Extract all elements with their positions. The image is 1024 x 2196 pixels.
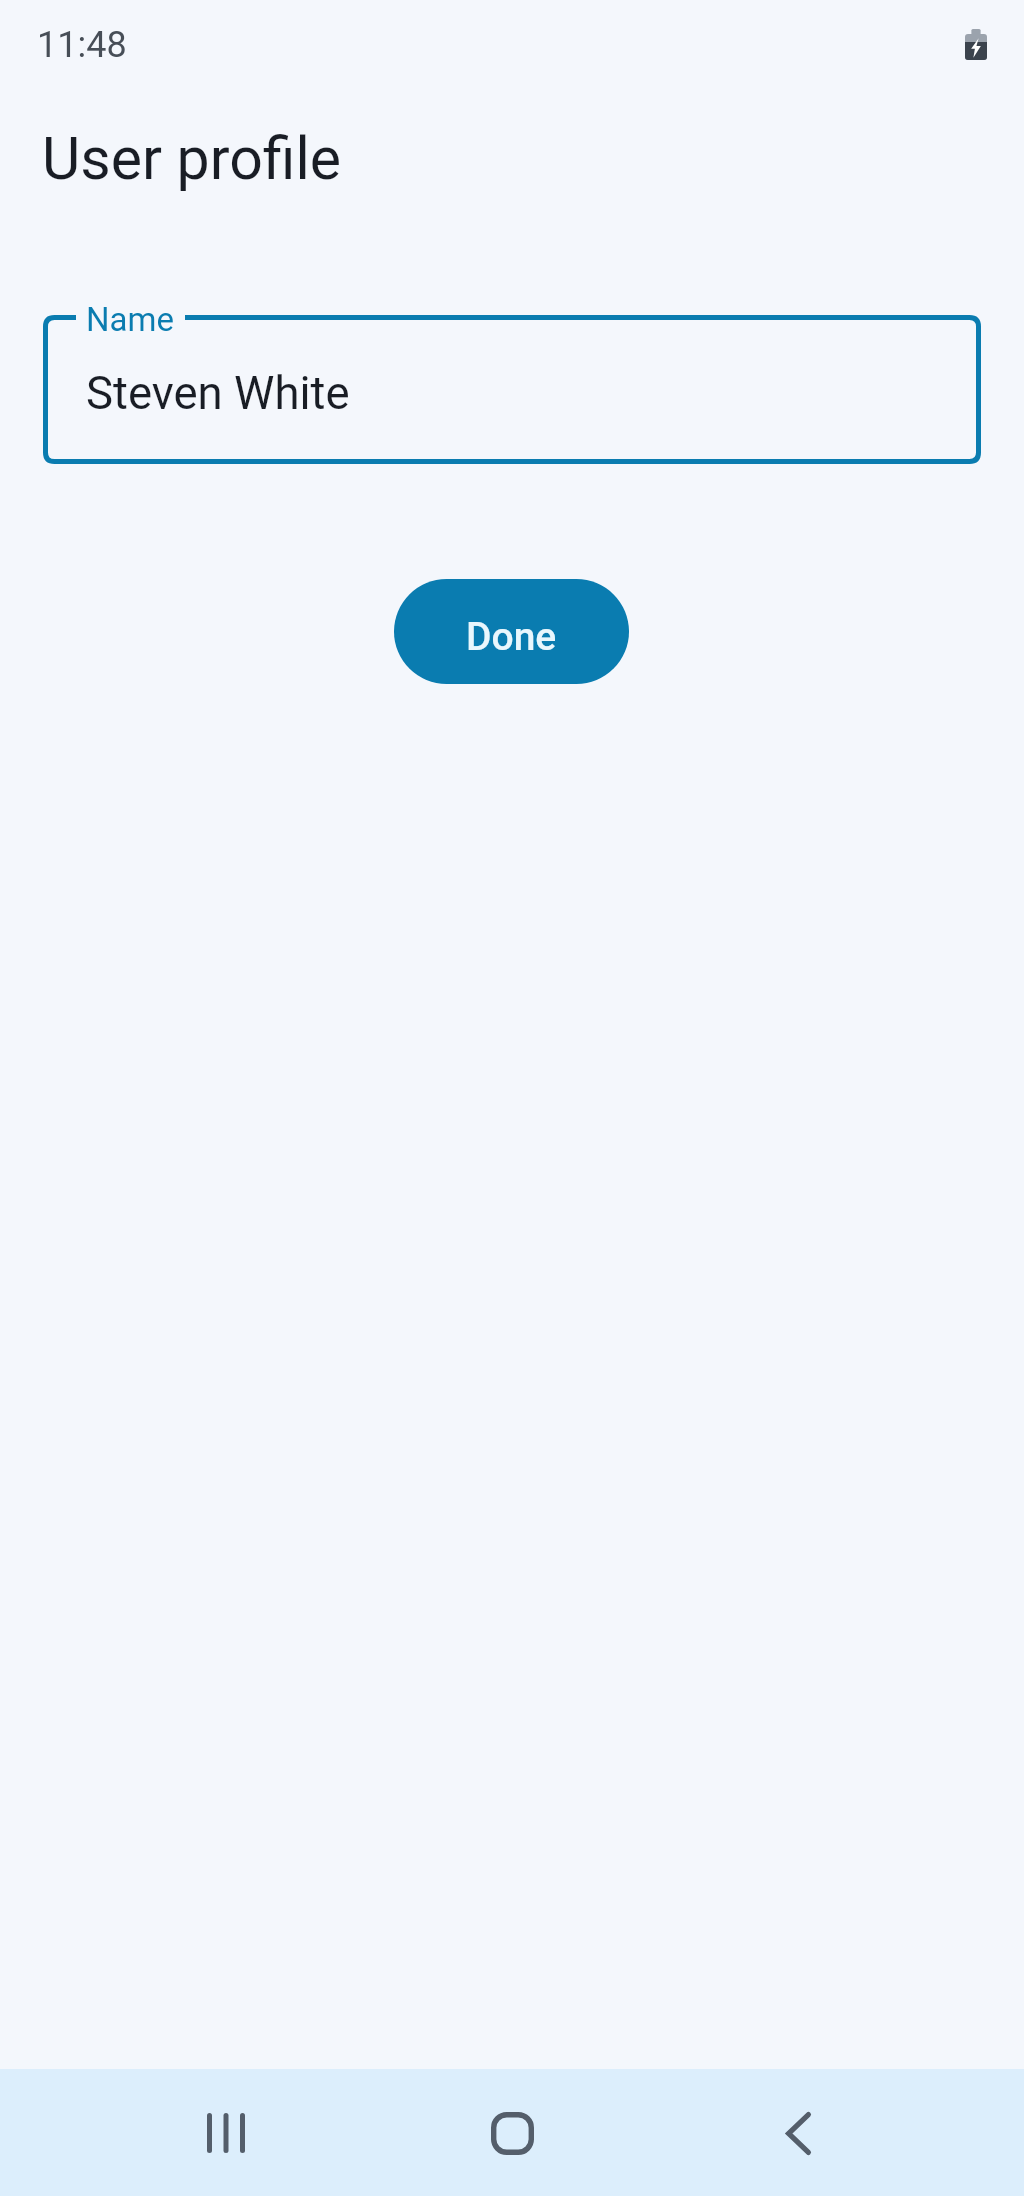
button[interactable]: Back	[739, 2085, 858, 2181]
staticText: User profile	[42, 124, 342, 193]
staticText: Done	[466, 614, 557, 660]
button[interactable]: Home	[453, 2085, 572, 2181]
staticText: Name	[86, 300, 174, 339]
button[interactable]: Recent apps	[166, 2085, 285, 2181]
button[interactable]: Done	[394, 579, 629, 684]
button[interactable]: Name	[43, 315, 981, 464]
staticText: Steven White	[86, 367, 350, 420]
staticText: 11:48	[37, 24, 127, 66]
